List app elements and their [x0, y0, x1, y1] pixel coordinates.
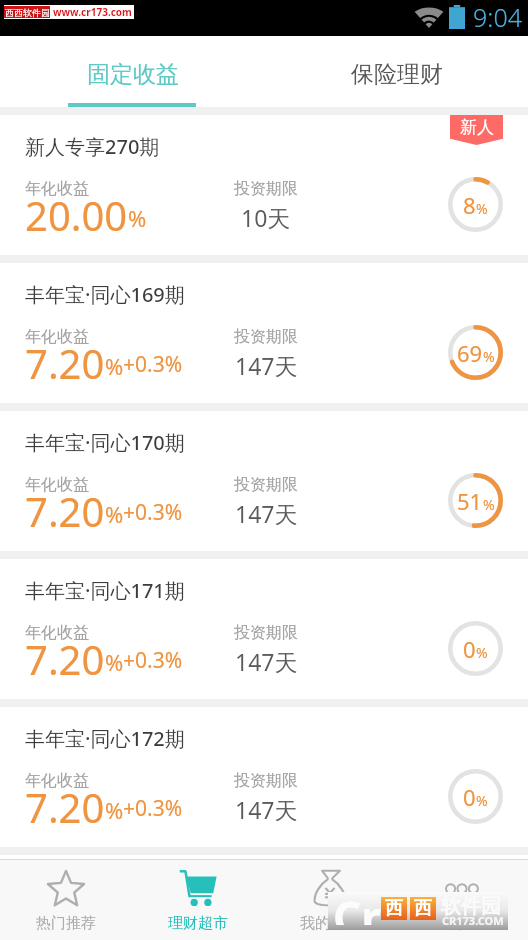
button[interactable]: 丰年宝·同心169期 — [0, 263, 528, 403]
staticText: 西 — [414, 897, 432, 920]
staticText: 西西软件园 — [5, 7, 50, 18]
staticText: 热门推荐 — [36, 914, 96, 933]
other: Battery — [449, 5, 465, 29]
staticText: 丰年宝·同心172期 — [25, 725, 185, 752]
staticText: 年化收益 — [25, 475, 89, 495]
staticText: 理财超市 — [168, 914, 228, 933]
staticText: 年化收益 — [25, 179, 89, 199]
staticText: 8 — [463, 190, 476, 220]
staticText: % — [105, 351, 124, 381]
staticText: 软件园 — [441, 894, 501, 919]
button[interactable]: 热门推荐 — [0, 860, 132, 940]
staticText: % — [105, 647, 124, 677]
button[interactable]: 我的资产 — [264, 860, 396, 940]
staticText: 年化收益 — [25, 327, 89, 347]
staticText: CR173.COM — [442, 913, 504, 928]
staticText: +0.3% — [123, 794, 183, 823]
staticText: % — [476, 643, 488, 662]
staticText: 10天 — [241, 202, 291, 233]
staticText: 西 — [385, 897, 403, 920]
button[interactable]: 更多 — [396, 860, 528, 940]
staticText: +0.3% — [123, 646, 183, 675]
staticText: 147天 — [235, 794, 298, 825]
other: Wi-Fi — [414, 7, 444, 29]
button[interactable]: 丰年宝·同心171期 — [0, 559, 528, 699]
staticText: 投资期限 — [234, 771, 298, 791]
staticText: Cr — [333, 887, 381, 925]
staticText: % — [476, 199, 488, 218]
button[interactable]: 丰年宝·同心172期 — [0, 707, 528, 847]
staticText: % — [476, 791, 488, 810]
staticText: 147天 — [235, 350, 298, 381]
staticText: 7.20 — [25, 632, 105, 686]
staticText: www.cr173.com — [53, 5, 132, 19]
button[interactable]: 丰年宝·同心170期 — [0, 411, 528, 551]
staticText: 保险理财 — [351, 60, 443, 89]
staticText: 147天 — [235, 498, 298, 529]
staticText: 年化收益 — [25, 771, 89, 791]
staticText: 丰年宝·同心171期 — [25, 577, 185, 604]
staticText: +0.3% — [123, 498, 183, 527]
staticText: 9:04 — [473, 0, 522, 34]
staticText: 0 — [463, 782, 476, 812]
staticText: +0.3% — [123, 350, 183, 379]
staticText: 年化收益 — [25, 623, 89, 643]
staticText: 更多 — [447, 914, 477, 933]
staticText: % — [483, 347, 495, 366]
staticText: 固定收益 — [87, 60, 179, 89]
staticText: 20.00 — [25, 188, 128, 242]
staticText: % — [128, 203, 147, 233]
staticText: 69 — [457, 338, 483, 368]
staticText: 丰年宝·同心169期 — [25, 281, 185, 308]
staticText: 7.20 — [25, 484, 105, 538]
staticText: 投资期限 — [234, 327, 298, 347]
button[interactable]: 固定收益 — [0, 36, 264, 107]
staticText: 投资期限 — [234, 179, 298, 199]
staticText: % — [105, 499, 124, 529]
button[interactable]: 新人专享270期 — [0, 115, 528, 255]
staticText: 投资期限 — [234, 623, 298, 643]
staticText: 147天 — [235, 646, 298, 677]
staticText: 51 — [457, 486, 483, 516]
staticText: 7.20 — [25, 336, 105, 390]
staticText: 新人 — [460, 117, 494, 138]
staticText: % — [105, 795, 124, 825]
staticText: 我的资产 — [300, 914, 360, 933]
staticText: 投资期限 — [234, 475, 298, 495]
staticText: 7.20 — [25, 780, 105, 834]
staticText: 0 — [463, 634, 476, 664]
button[interactable]: 理财超市 — [132, 860, 264, 940]
staticText: % — [483, 495, 495, 514]
staticText: 丰年宝·同心170期 — [25, 429, 185, 456]
button[interactable]: 保险理财 — [264, 36, 528, 107]
staticText: 新人专享270期 — [25, 133, 160, 160]
